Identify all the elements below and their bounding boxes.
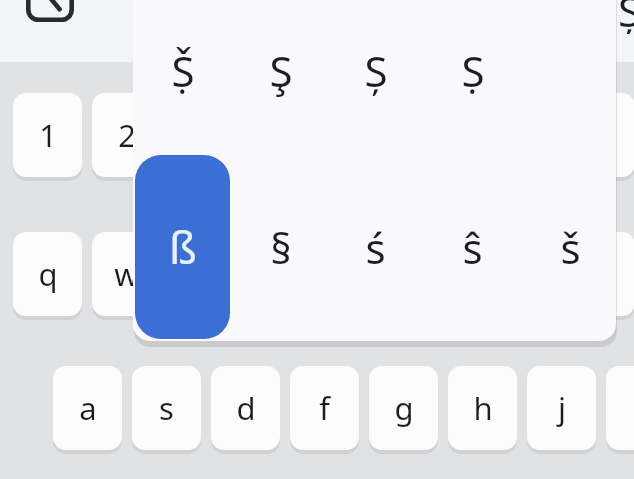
staticText: Ș	[618, 0, 634, 34]
button[interactable]: r	[250, 232, 319, 316]
staticText: s	[159, 387, 174, 429]
button[interactable]: d	[211, 366, 280, 450]
button[interactable]: f	[290, 366, 359, 450]
button[interactable]: a	[53, 366, 122, 450]
staticText: w	[114, 253, 139, 295]
staticText: §	[270, 219, 292, 276]
staticText: Ṣ̌	[171, 42, 195, 99]
button[interactable]: i	[566, 232, 634, 316]
button[interactable]: h	[448, 366, 517, 450]
button[interactable]: š	[523, 155, 618, 339]
button[interactable]: Ş	[233, 0, 328, 162]
button[interactable]: e	[171, 232, 240, 316]
button[interactable]: §	[233, 155, 328, 339]
button[interactable]: 4	[250, 93, 319, 177]
button[interactable]: ŝ	[425, 155, 520, 339]
staticText: ś	[365, 219, 386, 276]
staticText: š	[560, 219, 581, 276]
button[interactable]: Ṣ̌	[135, 0, 230, 162]
button[interactable]: s	[132, 366, 201, 450]
staticText: a	[79, 387, 97, 429]
staticText: 1	[39, 114, 57, 156]
staticText: 3	[197, 114, 215, 156]
staticText: Ș	[364, 42, 388, 99]
button[interactable]: 2	[92, 93, 161, 177]
staticText: f	[319, 387, 330, 429]
button[interactable]: 8	[566, 93, 634, 177]
button[interactable]: y	[408, 232, 477, 316]
button[interactable]: Ṣ	[425, 0, 520, 162]
button[interactable]: t	[329, 232, 398, 316]
staticText: j	[558, 387, 566, 429]
button[interactable]: 3	[171, 93, 240, 177]
staticText: ŝ	[462, 219, 483, 276]
button[interactable]: j	[527, 366, 596, 450]
button[interactable]: q	[13, 232, 82, 316]
staticText: Ş	[269, 42, 293, 99]
button[interactable]: 5	[329, 93, 398, 177]
staticText: h	[473, 387, 493, 429]
button[interactable]: w	[92, 232, 161, 316]
button[interactable]: k	[606, 366, 634, 450]
button[interactable]: 6	[408, 93, 477, 177]
staticText: ß	[169, 217, 197, 277]
staticText: t	[358, 253, 370, 295]
staticText: 2	[118, 114, 136, 156]
button[interactable]: ß	[135, 155, 230, 339]
staticText: r	[278, 253, 291, 295]
button[interactable]: ś	[328, 155, 423, 339]
staticText: g	[394, 387, 414, 429]
staticText: Ṣ	[461, 42, 485, 99]
button[interactable]: Undo	[26, 0, 74, 22]
button[interactable]: 1	[13, 93, 82, 177]
button[interactable]: Ș	[328, 0, 423, 162]
staticText: d	[236, 387, 256, 429]
button[interactable]: g	[369, 366, 438, 450]
staticText: q	[38, 253, 58, 295]
